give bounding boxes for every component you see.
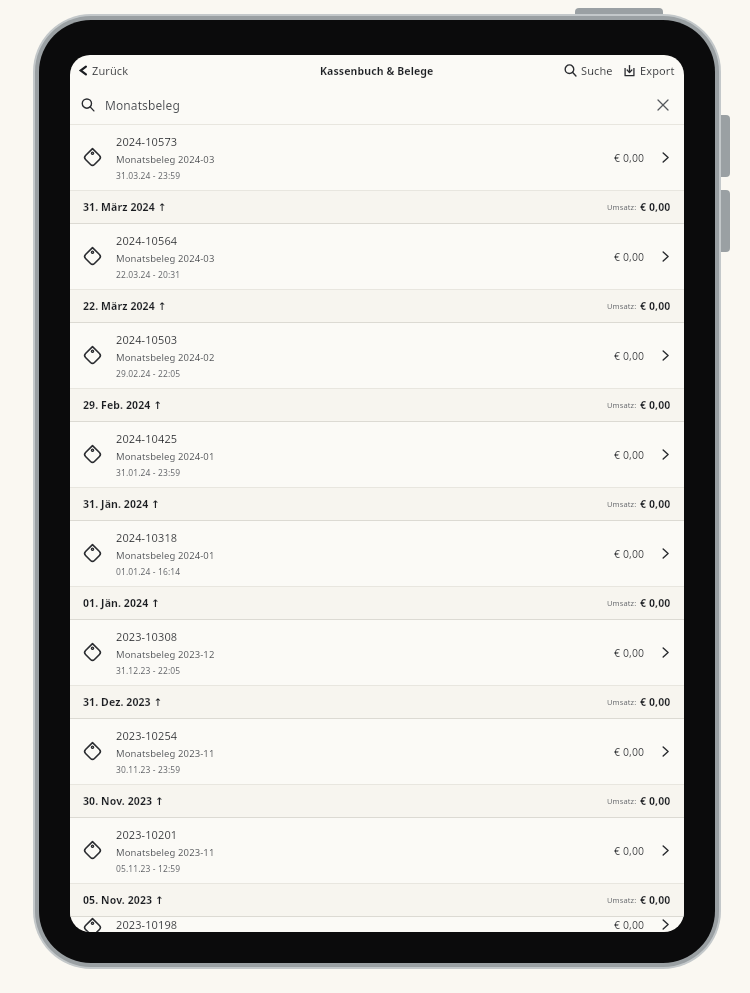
staticText: 22.03.24 - 20:31 [116,269,181,281]
staticText: Monatsbeleg [105,97,180,113]
staticText: Monatsbeleg 2023-11 [116,846,215,859]
staticText: 2023-10198 [116,917,178,932]
staticText: € 0,00 [640,794,671,808]
staticText: € 0,00 [614,918,645,932]
staticText: 30.11.23 - 23:59 [116,764,181,776]
staticText: Kassenbuch & Belege [320,64,434,78]
staticText: € 0,00 [640,596,671,610]
staticText: Suche [581,63,613,78]
staticText: Monatsbeleg 2024-01 [116,549,215,562]
staticText: Export [640,63,675,78]
staticText: 2024-10564 [116,233,178,248]
staticText: € 0,00 [614,646,645,660]
staticText: Monatsbeleg 2024-01 [116,450,215,463]
button[interactable]: 2024-10318 [70,521,684,586]
staticText: Monatsbeleg 2024-03 [116,153,215,166]
staticText: € 0,00 [640,695,671,709]
staticText: € 0,00 [614,349,645,363]
staticText: 2023-10308 [116,629,178,644]
button[interactable]: 2024-10425 [70,422,684,487]
button[interactable]: 01. Jän. 2024 ↑ [70,587,684,619]
staticText: 31.01.24 - 23:59 [116,467,181,479]
staticText: 29. Feb. 2024 ↑ [83,398,163,412]
staticText: 01.01.24 - 16:14 [116,566,181,578]
staticText: Umsatz: [607,301,637,311]
button[interactable]: Suche löschen [653,95,673,115]
button[interactable]: 2023-10201 [70,818,684,883]
button[interactable]: 2024-10573 [70,125,684,190]
button[interactable]: Zurück [70,55,139,86]
staticText: Zurück [92,63,129,78]
staticText: Monatsbeleg 2024-02 [116,351,215,364]
staticText: Umsatz: [607,400,637,410]
staticText: 05. Nov. 2023 ↑ [83,893,164,907]
staticText: 31. März 2024 ↑ [83,200,167,214]
staticText: Umsatz: [607,895,637,905]
button[interactable]: 31. März 2024 ↑ [70,191,684,223]
staticText: Umsatz: [607,796,637,806]
staticText: € 0,00 [640,398,671,412]
staticText: € 0,00 [614,448,645,462]
staticText: € 0,00 [640,893,671,907]
staticText: 22. März 2024 ↑ [83,299,167,313]
button[interactable]: 31. Dez. 2023 ↑ [70,686,684,718]
staticText: € 0,00 [614,250,645,264]
staticText: Monatsbeleg 2024-03 [116,252,215,265]
staticText: € 0,00 [614,844,645,858]
staticText: Monatsbeleg 2023-11 [116,747,215,760]
staticText: 31.03.24 - 23:59 [116,170,181,182]
staticText: 31. Jän. 2024 ↑ [83,497,161,511]
staticText: 29.02.24 - 22:05 [116,368,181,380]
staticText: 2024-10425 [116,431,178,446]
button[interactable]: Monatsbeleg [70,86,684,124]
staticText: Umsatz: [607,202,637,212]
staticText: € 0,00 [640,299,671,313]
staticText: € 0,00 [614,547,645,561]
button[interactable]: 2023-10198 [70,917,684,932]
staticText: € 0,00 [614,151,645,165]
staticText: 2024-10318 [116,530,178,545]
staticText: 01. Jän. 2024 ↑ [83,596,161,610]
staticText: Umsatz: [607,697,637,707]
button[interactable]: 2023-10308 [70,620,684,685]
button[interactable]: 30. Nov. 2023 ↑ [70,785,684,817]
staticText: 31. Dez. 2023 ↑ [83,695,163,709]
button[interactable]: 2024-10503 [70,323,684,388]
staticText: € 0,00 [640,200,671,214]
button[interactable]: 2024-10564 [70,224,684,289]
button[interactable]: Suche [559,55,618,86]
button[interactable]: Export [618,55,684,86]
staticText: Umsatz: [607,598,637,608]
button[interactable]: 2023-10254 [70,719,684,784]
staticText: € 0,00 [640,497,671,511]
staticText: 2023-10254 [116,728,178,743]
staticText: 2023-10201 [116,827,178,842]
staticText: Umsatz: [607,499,637,509]
staticText: Monatsbeleg 2023-12 [116,648,215,661]
staticText: 05.11.23 - 12:59 [116,863,181,875]
staticText: 31.12.23 - 22:05 [116,665,181,677]
button[interactable]: 29. Feb. 2024 ↑ [70,389,684,421]
button[interactable]: 22. März 2024 ↑ [70,290,684,322]
staticText: € 0,00 [614,745,645,759]
staticText: 30. Nov. 2023 ↑ [83,794,164,808]
button[interactable]: 05. Nov. 2023 ↑ [70,884,684,916]
staticText: 2024-10573 [116,134,178,149]
staticText: 2024-10503 [116,332,178,347]
button[interactable]: 31. Jän. 2024 ↑ [70,488,684,520]
